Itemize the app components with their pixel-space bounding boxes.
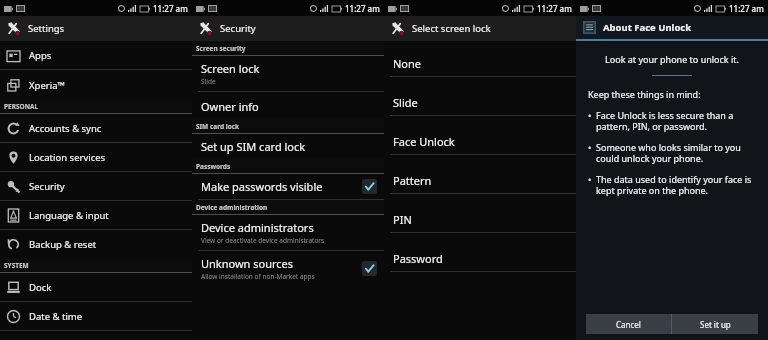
staticText: Password	[393, 251, 443, 266]
button[interactable]: Settings	[0, 16, 192, 41]
staticText: •	[588, 141, 592, 153]
button[interactable]: Toggle Make passwords visible	[362, 179, 377, 194]
staticText: Location services	[29, 151, 106, 164]
button[interactable]: Device administrators	[192, 215, 384, 250]
button[interactable]: Pattern	[384, 167, 576, 193]
staticText: Settings	[28, 22, 65, 35]
button[interactable]: Date & time	[0, 302, 192, 330]
staticText: Device administration	[196, 203, 268, 212]
staticText: Face Unlock	[393, 134, 455, 149]
button[interactable]: Set up SIM card lock	[192, 134, 384, 159]
button[interactable]: Toggle Unknown sources	[362, 261, 377, 276]
staticText: •	[588, 173, 592, 185]
staticText: PERSONAL	[4, 102, 39, 111]
button[interactable]: Set it up	[672, 314, 758, 334]
staticText: Language & input	[29, 209, 109, 222]
staticText: Screen security	[196, 44, 246, 53]
staticText: •	[588, 109, 592, 121]
staticText: About Face Unlock	[603, 21, 692, 34]
button[interactable]: Language & input	[0, 201, 192, 229]
staticText: Owner info	[201, 99, 259, 114]
staticText: Screen lock	[201, 61, 260, 76]
staticText: Accounts & sync	[29, 122, 102, 135]
button[interactable]: Location services	[0, 143, 192, 171]
staticText: Device administrators	[201, 220, 314, 235]
staticText: Security	[29, 180, 65, 193]
button[interactable]: About Face Unlock	[576, 16, 768, 39]
staticText: 11:27 am	[153, 3, 188, 14]
button[interactable]: Make passwords visible	[192, 174, 384, 199]
staticText: SIM card lock	[196, 122, 240, 131]
staticText: PIN	[393, 212, 412, 227]
button[interactable]: Security	[192, 16, 384, 41]
button[interactable]: Unknown sources	[192, 251, 384, 286]
staticText: Set up SIM card lock	[201, 139, 306, 154]
staticText: Select screen lock	[412, 22, 491, 35]
staticText: Someone who looks similar to you could u…	[596, 141, 756, 165]
button[interactable]: Select screen lock	[384, 16, 576, 41]
button[interactable]: Screen lock	[192, 56, 384, 91]
staticText: Allow installation of non-Market apps	[201, 272, 315, 281]
staticText: Make passwords visible	[201, 179, 323, 194]
staticText: Backup & reset	[29, 238, 97, 251]
staticText: Xperia™	[29, 79, 65, 92]
staticText: 11:27 am	[537, 3, 572, 14]
staticText: Dock	[29, 281, 52, 294]
button[interactable]: PIN	[384, 206, 576, 232]
staticText: Pattern	[393, 173, 432, 188]
staticText: Look at your phone to unlock it.	[588, 53, 756, 65]
staticText: Keep these things in mind:	[588, 88, 701, 100]
button[interactable]: Slide	[384, 89, 576, 115]
staticText: 11:27 am	[345, 3, 380, 14]
button[interactable]: Apps	[0, 41, 192, 69]
staticText: None	[393, 56, 422, 71]
button[interactable]: Cancel	[586, 314, 671, 334]
staticText: SYSTEM	[4, 261, 29, 270]
staticText: 11:27 am	[729, 3, 764, 14]
staticText: Apps	[29, 49, 52, 62]
button[interactable]: Accounts & sync	[0, 114, 192, 142]
staticText: View or deactivate device administrators	[201, 236, 325, 245]
staticText: Set it up	[700, 319, 731, 330]
staticText: Slide	[201, 77, 216, 86]
staticText: Unknown sources	[201, 256, 294, 271]
staticText: The data used to identify your face is k…	[596, 173, 756, 197]
button[interactable]: Password	[384, 245, 576, 271]
staticText: Cancel	[616, 319, 641, 330]
staticText: Passwords	[196, 162, 231, 171]
button[interactable]: Xperia™	[0, 71, 192, 99]
staticText: Face Unlock is less secure than a patter…	[596, 109, 756, 133]
staticText: Security	[220, 22, 256, 35]
staticText: Slide	[393, 95, 418, 110]
button[interactable]: Face Unlock	[384, 128, 576, 154]
button[interactable]: Dock	[0, 273, 192, 301]
button[interactable]: Backup & reset	[0, 230, 192, 258]
button[interactable]: Owner info	[192, 94, 384, 119]
staticText: Date & time	[29, 310, 83, 323]
button[interactable]: Security	[0, 172, 192, 200]
button[interactable]: None	[384, 50, 576, 76]
